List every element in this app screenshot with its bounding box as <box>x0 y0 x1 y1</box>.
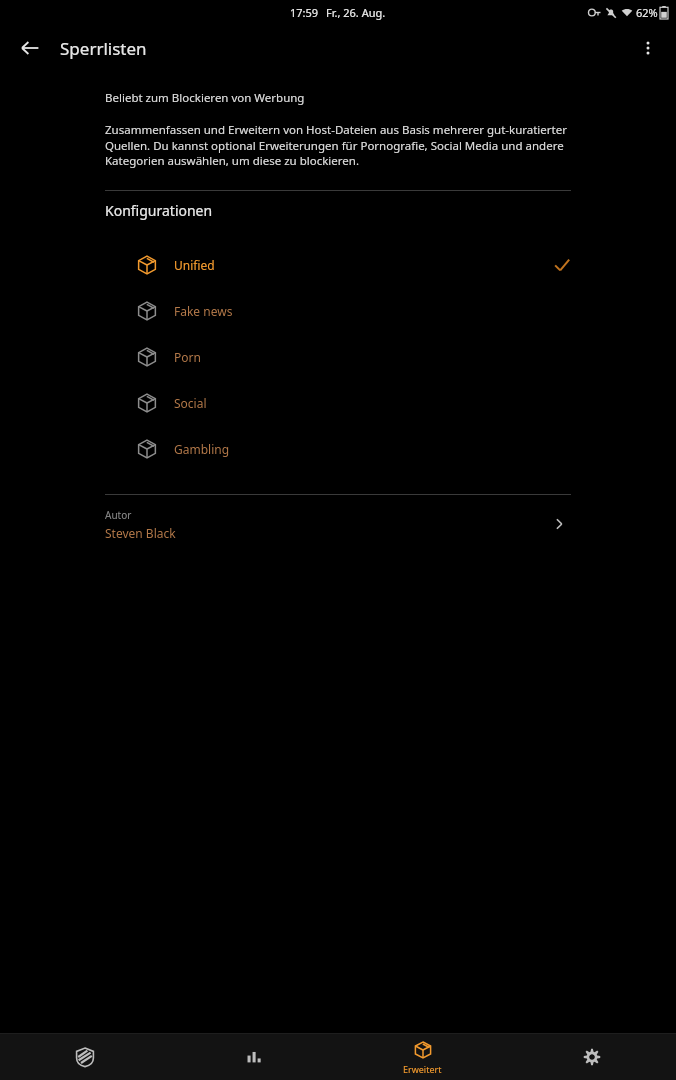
button[interactable]: Unified <box>0 242 676 288</box>
button[interactable]: More options <box>630 30 666 66</box>
button[interactable]: Schutz <box>0 1034 169 1080</box>
button[interactable]: Erweitert <box>338 1034 507 1080</box>
staticText: Erweitert <box>403 1063 442 1075</box>
button[interactable]: Einstellungen <box>507 1034 676 1080</box>
staticText: Porn <box>174 349 201 365</box>
staticText: Unified <box>174 257 215 273</box>
button[interactable]: Fake news <box>0 288 676 334</box>
button[interactable]: Back <box>12 30 48 66</box>
staticText: Sperrlisten <box>60 37 147 60</box>
staticText: Fr., 26. Aug. <box>326 5 386 20</box>
staticText: Autor <box>105 508 132 522</box>
button[interactable]: Autor <box>0 495 676 553</box>
staticText: 17:59 <box>290 5 319 20</box>
staticText: Konfigurationen <box>105 201 213 220</box>
button[interactable]: Gambling <box>0 426 676 472</box>
button[interactable]: Statistik <box>169 1034 338 1080</box>
staticText: Social <box>174 395 207 411</box>
button[interactable]: Social <box>0 380 676 426</box>
staticText: Zusammenfassen und Erweitern von Host-Da… <box>105 122 571 168</box>
button[interactable]: Porn <box>0 334 676 380</box>
staticText: 62% <box>636 5 658 20</box>
staticText: Steven Black <box>105 525 176 541</box>
staticText: Fake news <box>174 303 233 319</box>
staticText: Beliebt zum Blockieren von Werbung <box>105 90 305 106</box>
staticText: Gambling <box>174 441 230 457</box>
